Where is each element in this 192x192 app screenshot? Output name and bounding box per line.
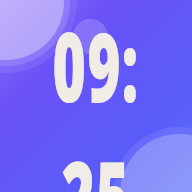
staticText: 09:25 [38, 0, 154, 192]
button[interactable]: Watch face showing the time 09:25 [0, 0, 192, 192]
